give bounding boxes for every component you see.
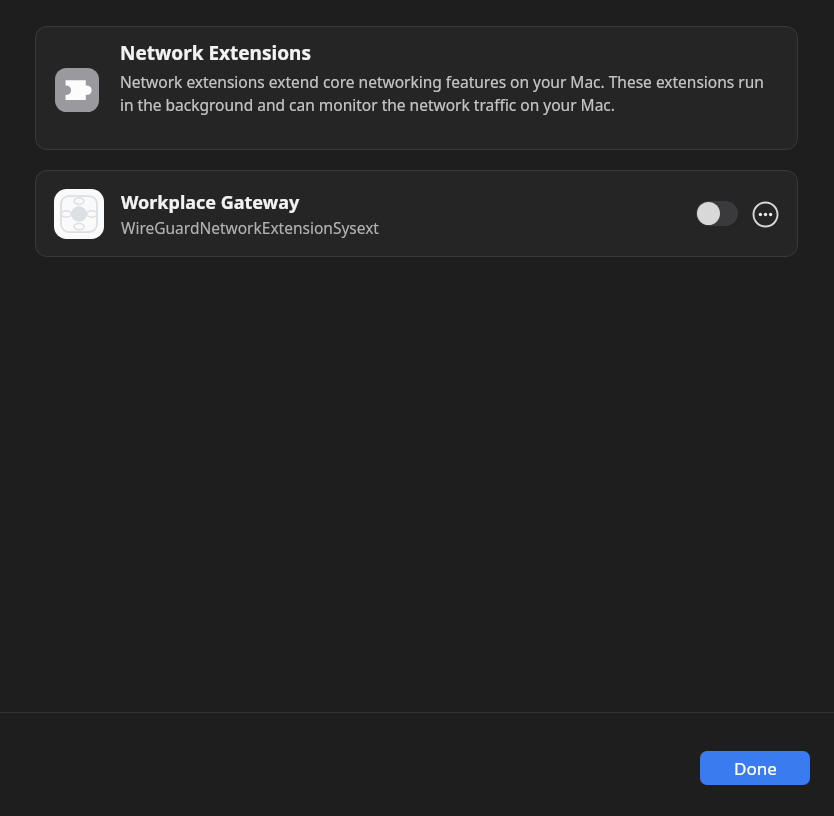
button[interactable]: Enable Workplace Gateway bbox=[692, 197, 742, 230]
staticText: Done bbox=[734, 757, 777, 780]
staticText: Network extensions extend core networkin… bbox=[120, 71, 780, 116]
button[interactable]: Workplace Gateway bbox=[35, 170, 798, 257]
staticText: Workplace Gateway bbox=[121, 190, 300, 215]
button[interactable]: Done bbox=[700, 751, 810, 785]
staticText: WireGuardNetworkExtensionSysext bbox=[121, 217, 379, 238]
button[interactable]: More options bbox=[750, 199, 780, 229]
staticText: Network Extensions bbox=[120, 40, 311, 66]
